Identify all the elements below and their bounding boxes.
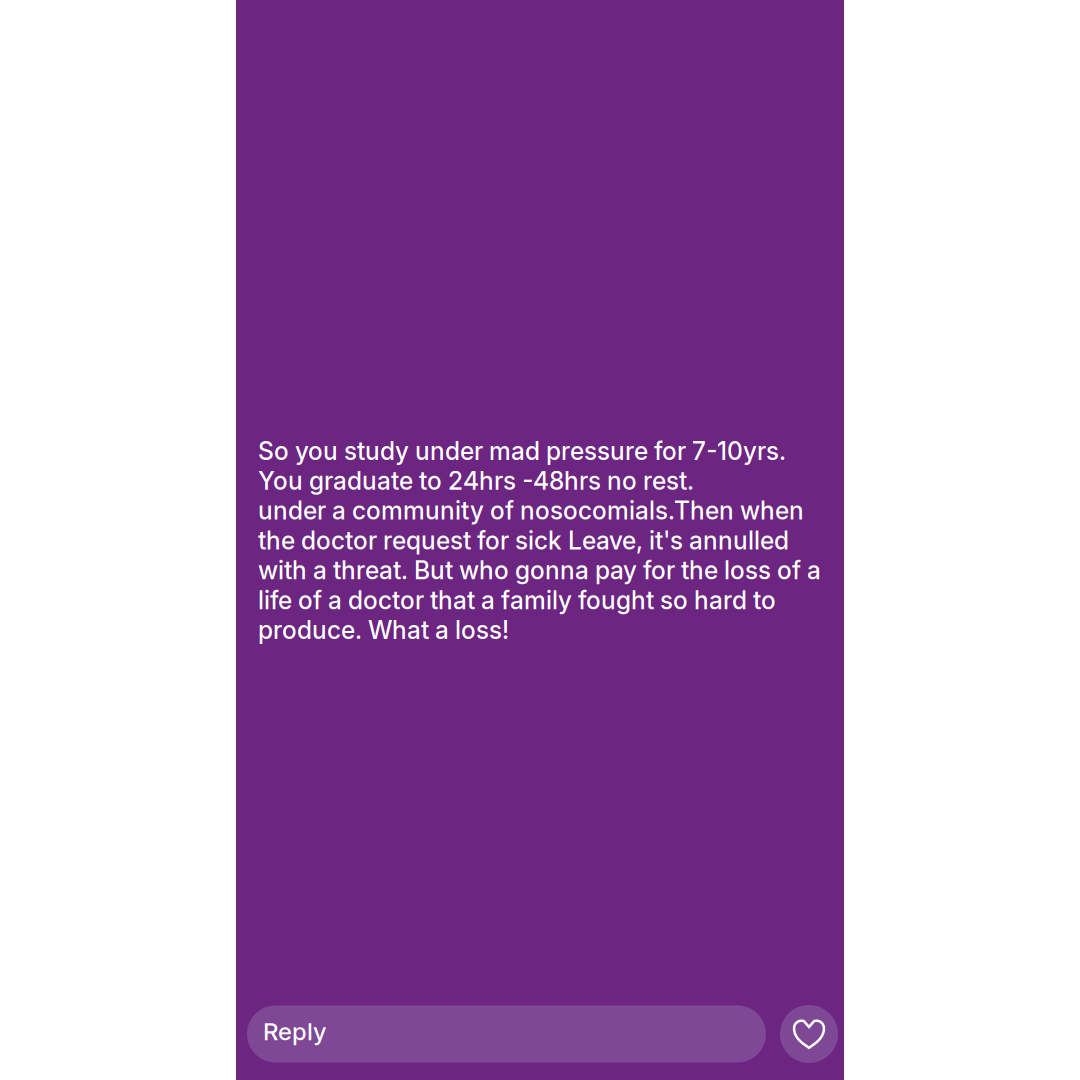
button[interactable]: Reply (247, 1005, 766, 1062)
staticText: Reply (263, 1017, 327, 1046)
button[interactable]: Like (780, 1005, 838, 1063)
staticText: So you study under mad pressure for 7-10… (258, 436, 821, 645)
